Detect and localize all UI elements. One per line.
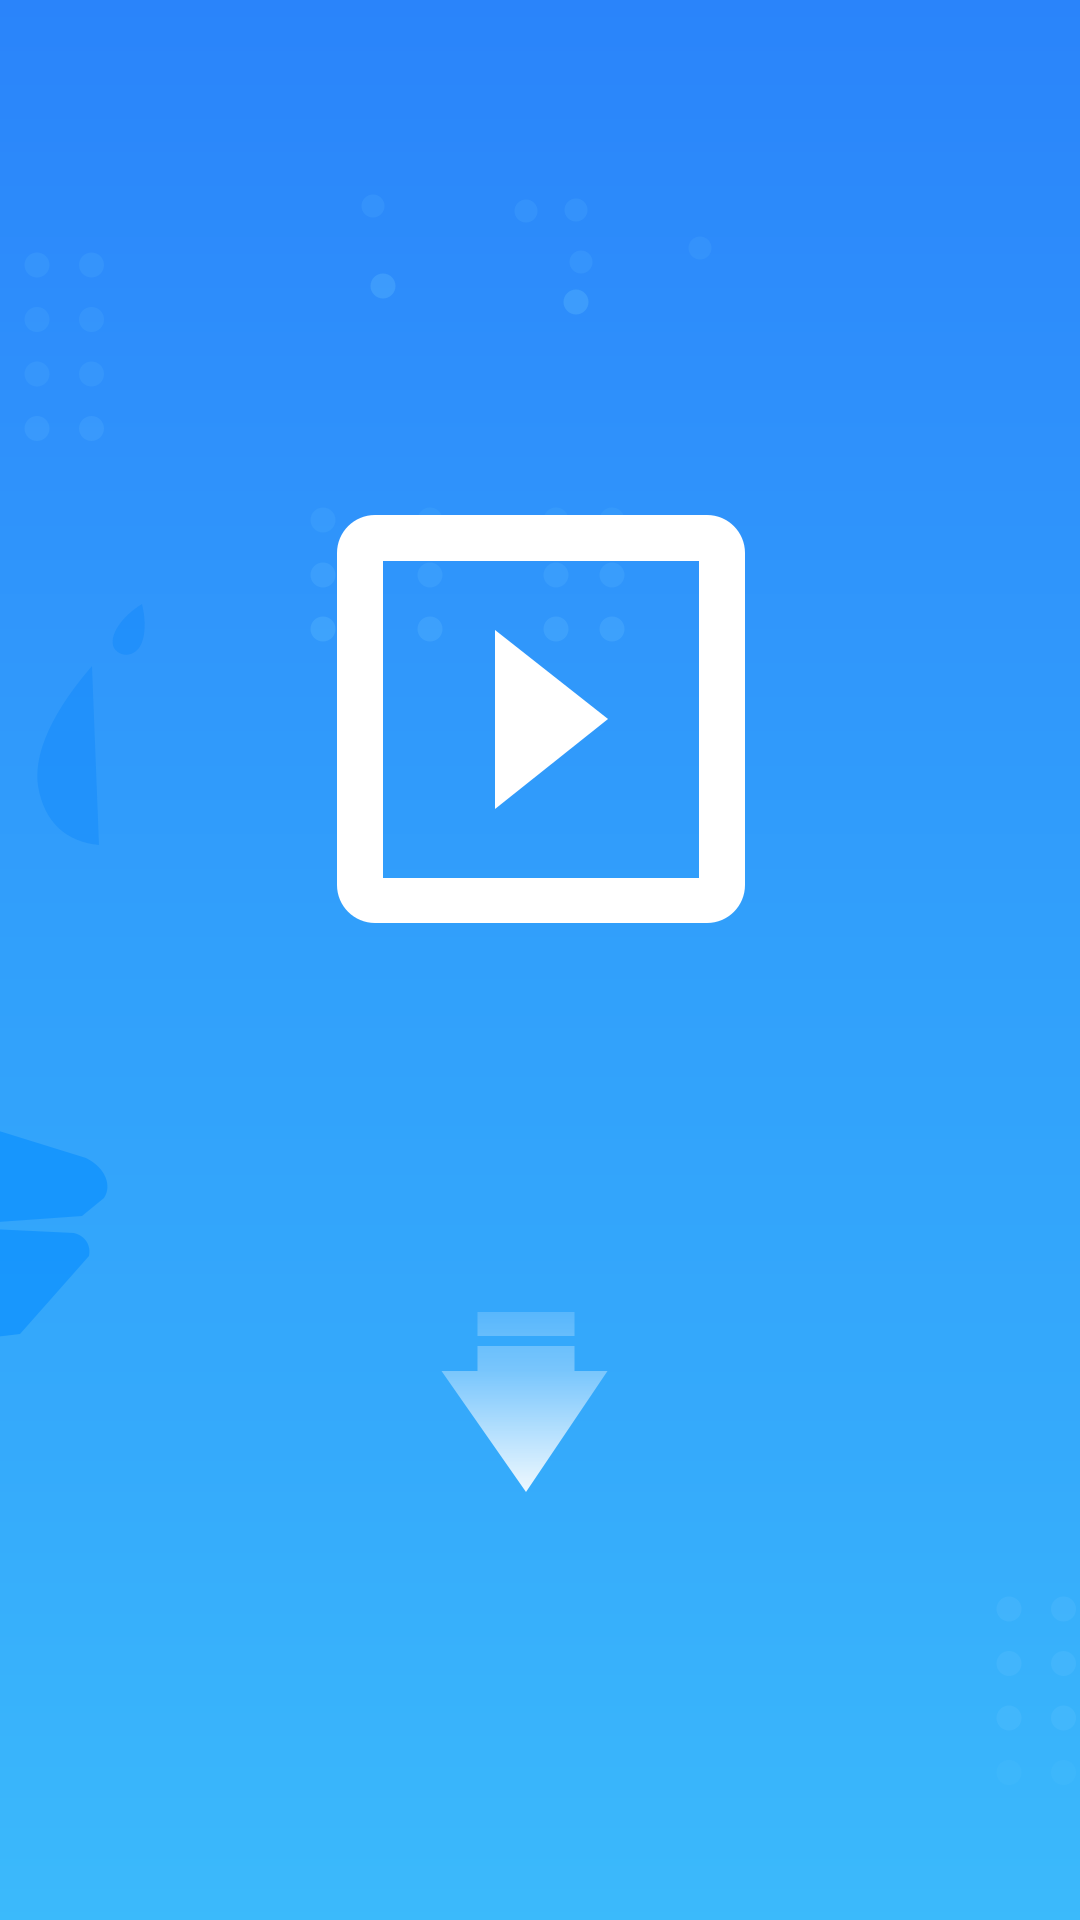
button[interactable]: Download (441, 1312, 607, 1492)
button[interactable]: Play (337, 515, 745, 923)
